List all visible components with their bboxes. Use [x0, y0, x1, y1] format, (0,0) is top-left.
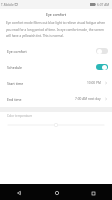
staticText: Eye comfort: [46, 12, 67, 17]
button[interactable]: Eye comfort: [0, 43, 112, 59]
button[interactable]: Start time: [0, 75, 112, 91]
staticText: Start time: [7, 81, 24, 86]
staticText: 6:07 AM: [97, 3, 110, 7]
staticText: Eye comfort mode filters out blue light …: [6, 21, 106, 38]
button[interactable]: Schedule: [0, 59, 112, 75]
staticText: Eye comfort: [7, 49, 27, 54]
button[interactable]: Recents: [75, 184, 112, 200]
staticText: T-Mobile: [1, 3, 14, 7]
button[interactable]: Home: [38, 184, 75, 200]
button[interactable]: Eye comfort off: [96, 48, 108, 54]
button[interactable]: End time: [0, 91, 112, 107]
button[interactable]: Schedule on: [96, 64, 108, 70]
staticText: Schedule: [7, 65, 22, 70]
button[interactable]: Back: [0, 184, 38, 200]
staticText: Color temperature: [7, 114, 33, 118]
staticText: End time: [7, 97, 22, 102]
staticText: 7:00 AM next day: [75, 97, 101, 101]
staticText: 10:00 PM: [87, 81, 101, 85]
